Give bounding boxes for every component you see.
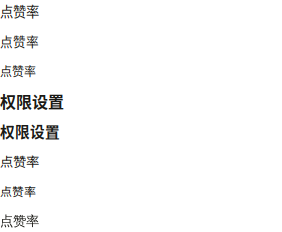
staticText: 权限设置: [0, 89, 64, 113]
staticText: 点赞率: [0, 182, 36, 200]
staticText: 点赞率: [0, 32, 39, 50]
staticText: 点赞率: [0, 151, 39, 171]
staticText: 权限设置: [0, 120, 60, 142]
staticText: 点赞率: [0, 213, 39, 229]
staticText: 点赞率: [0, 62, 36, 80]
staticText: 点赞率: [0, 1, 39, 21]
